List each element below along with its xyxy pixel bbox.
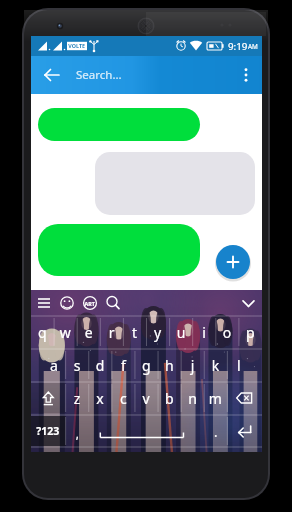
button[interactable]: More options — [234, 56, 262, 94]
button[interactable] — [71, 56, 241, 94]
button[interactable]: Back — [31, 56, 71, 94]
button[interactable]: Menu — [33, 292, 56, 315]
button[interactable]: Emoji — [56, 292, 79, 315]
button[interactable]: New message — [216, 245, 250, 279]
button[interactable]: Search — [102, 292, 125, 315]
button[interactable]: Art themes — [79, 292, 102, 315]
button[interactable]: Hide keyboard — [238, 292, 261, 315]
